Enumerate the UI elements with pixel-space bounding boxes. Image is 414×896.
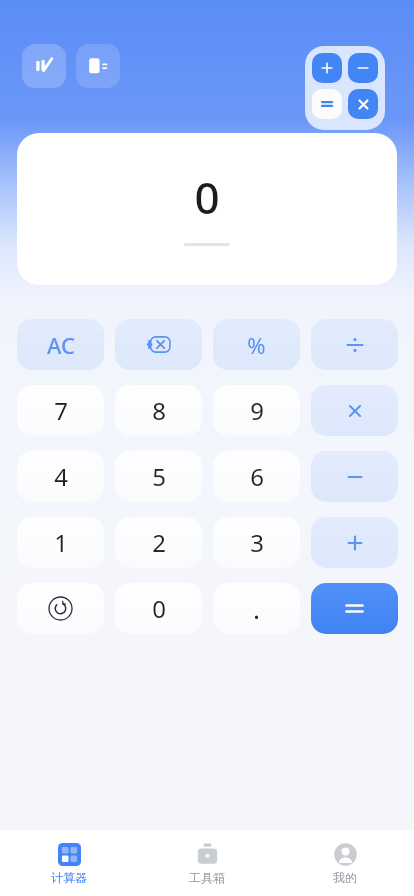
button[interactable]: Calculator widget [305, 46, 385, 130]
staticText: 2 [152, 526, 166, 559]
staticText: 5 [152, 460, 166, 493]
staticText: 7 [54, 394, 68, 427]
button[interactable]: Handwriting input [22, 44, 66, 88]
staticText: 6 [250, 460, 264, 493]
button[interactable]: 我的 [276, 834, 414, 893]
staticText: 4 [54, 460, 68, 493]
button[interactable]: Plus [311, 517, 398, 568]
staticText: 0 [152, 592, 166, 625]
staticText: 9 [250, 394, 264, 427]
button[interactable]: Backspace [115, 319, 202, 370]
staticText: AC [47, 330, 75, 360]
button[interactable]: 6 [213, 451, 300, 502]
button[interactable]: 2 [115, 517, 202, 568]
button[interactable]: Percent [213, 319, 300, 370]
button[interactable]: 4 [17, 451, 104, 502]
button[interactable]: 0 [17, 133, 397, 285]
button[interactable]: 8 [115, 385, 202, 436]
button[interactable]: 5 [115, 451, 202, 502]
staticText: % [247, 330, 266, 360]
button[interactable]: Unit converter [76, 44, 120, 88]
staticText: 3 [250, 526, 264, 559]
button[interactable]: 3 [213, 517, 300, 568]
button[interactable]: 0 [115, 583, 202, 634]
staticText: 8 [152, 394, 166, 427]
staticText: 1 [54, 526, 68, 559]
staticText: 0 [194, 167, 220, 227]
button[interactable]: 1 [17, 517, 104, 568]
button[interactable]: Equals [311, 583, 398, 634]
button[interactable]: 7 [17, 385, 104, 436]
button[interactable]: Multiply [311, 385, 398, 436]
button[interactable]: 9 [213, 385, 300, 436]
button[interactable]: AC [17, 319, 104, 370]
button[interactable]: History [17, 583, 104, 634]
button[interactable]: Minus [311, 451, 398, 502]
button[interactable]: Divide [311, 319, 398, 370]
staticText: 我的 [333, 870, 357, 885]
button[interactable]: . [213, 583, 300, 634]
staticText: 计算器 [51, 870, 87, 885]
staticText: . [253, 591, 260, 626]
staticText: 工具箱 [189, 870, 225, 885]
button[interactable]: 工具箱 [138, 834, 276, 893]
button[interactable]: 计算器 [0, 834, 138, 893]
